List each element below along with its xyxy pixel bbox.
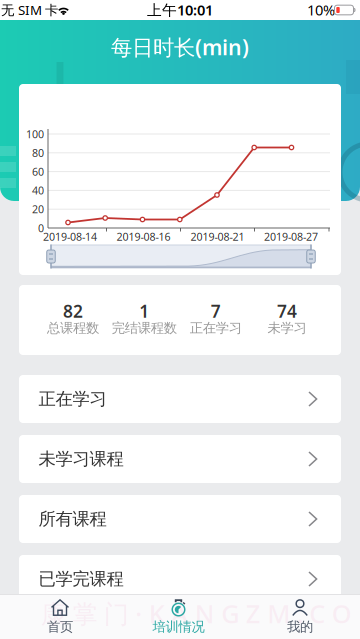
staticText: 2019-08-27 <box>264 229 318 244</box>
staticText: 2019-08-16 <box>116 229 170 244</box>
staticText: 康掌门·KANGZM.COM <box>41 597 360 630</box>
staticText: 总课程数 <box>47 320 99 336</box>
staticText: 我的 <box>287 619 313 635</box>
staticText: 无 SIM 卡 <box>1 1 58 19</box>
staticText: 0 <box>38 221 44 235</box>
staticText: 74 <box>277 299 297 322</box>
staticText: 完结课程数 <box>112 320 177 336</box>
staticText: 10% <box>307 0 335 20</box>
staticText: 每日时长(min) <box>111 33 249 61</box>
staticText: 未学习课程 <box>38 448 123 470</box>
staticText: 20 <box>32 202 44 216</box>
staticText: 正在学习 <box>38 388 106 410</box>
staticText: 60 <box>32 164 44 179</box>
staticText: 100 <box>26 127 44 141</box>
button[interactable]: 未学习课程 <box>19 435 341 483</box>
button[interactable]: 已学完课程 <box>19 555 341 603</box>
staticText: 首页 <box>47 619 73 635</box>
button[interactable]: 首页 <box>5 594 115 639</box>
staticText: 上午10:01 <box>147 0 213 20</box>
staticText: 培训情况 <box>152 619 204 635</box>
button[interactable]: 正在学习 <box>19 375 341 423</box>
staticText: 2019-08-21 <box>190 229 244 244</box>
button[interactable]: 培训情况 <box>123 594 233 639</box>
staticText: 40 <box>32 183 44 197</box>
staticText: 1 <box>139 299 149 322</box>
button[interactable]: 所有课程 <box>19 495 341 543</box>
staticText: 2019-08-14 <box>43 229 97 244</box>
staticText: 82 <box>63 299 83 322</box>
staticText: 所有课程 <box>38 508 106 530</box>
staticText: 7 <box>211 299 221 322</box>
staticText: 未学习 <box>267 320 306 336</box>
staticText: 已学完课程 <box>38 568 123 590</box>
staticText: 80 <box>32 146 44 160</box>
staticText: 正在学习 <box>190 320 242 336</box>
button[interactable]: 我的 <box>245 594 355 639</box>
